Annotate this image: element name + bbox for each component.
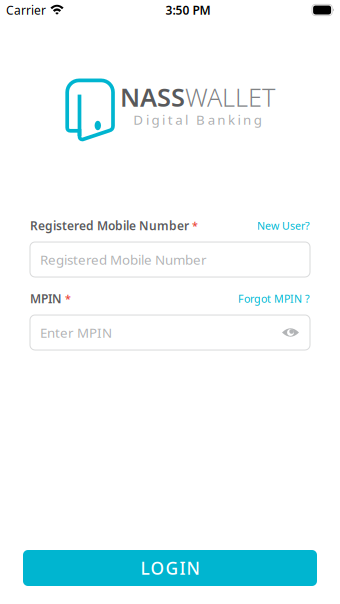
staticText: Digital Banking (133, 111, 262, 128)
staticText: New User? (257, 218, 310, 233)
button[interactable]: Registered Mobile Number (30, 242, 310, 277)
button[interactable]: Forgot MPIN ? (238, 291, 310, 306)
button[interactable]: New User? (257, 218, 310, 233)
staticText: * (62, 291, 71, 306)
button[interactable]: LOGIN (23, 550, 317, 586)
staticText: Carrier (6, 2, 46, 18)
staticText: WALLET (185, 80, 275, 114)
staticText: MPIN (30, 290, 62, 306)
staticText: Forgot MPIN ? (238, 291, 310, 306)
staticText: Enter MPIN (40, 324, 112, 341)
staticText: NASS (120, 80, 185, 114)
button[interactable]: Enter MPIN (30, 315, 310, 350)
staticText: LOGIN (140, 556, 199, 579)
staticText: Registered Mobile Number (40, 251, 207, 268)
staticText: Registered Mobile Number (30, 217, 189, 233)
staticText: 3:50 PM (165, 2, 210, 18)
staticText: * (189, 218, 198, 233)
